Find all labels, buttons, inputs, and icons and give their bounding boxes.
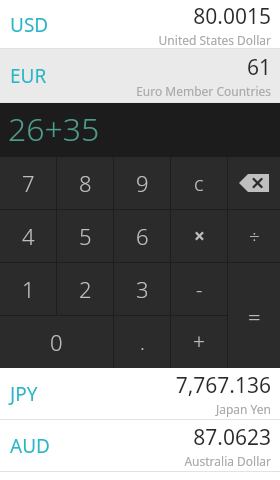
staticText: 87.0623	[193, 423, 271, 452]
staticText: 5	[79, 221, 92, 251]
staticText: 3	[136, 274, 149, 304]
staticText: ÷	[249, 223, 260, 249]
button[interactable]: +	[171, 316, 227, 368]
staticText: Japan Yen	[215, 401, 271, 417]
staticText: -	[196, 276, 203, 303]
button[interactable]: EUR	[0, 49, 280, 103]
staticText: 7	[22, 168, 35, 198]
button[interactable]: ×	[171, 210, 227, 262]
staticText: EUR	[10, 63, 47, 89]
staticText: United States Dollar	[158, 32, 271, 48]
staticText: AUD	[10, 433, 50, 459]
staticText: 2	[79, 274, 92, 304]
staticText: 26+35	[8, 107, 100, 151]
button[interactable]: USD	[0, 0, 280, 49]
staticText: =	[248, 301, 261, 331]
staticText: 6	[136, 221, 149, 251]
staticText: 4	[22, 221, 35, 251]
button[interactable]: 8	[57, 157, 113, 209]
button[interactable]: 3	[114, 263, 170, 315]
button[interactable]: ÷	[228, 210, 280, 262]
button[interactable]: 4	[0, 210, 56, 262]
staticText: 7,767.136	[175, 371, 271, 400]
staticText: c	[194, 170, 204, 197]
staticText: 80.0015	[193, 2, 271, 31]
button[interactable]: Backspace	[228, 157, 280, 209]
button[interactable]: 7	[0, 157, 56, 209]
staticText: Australia Dollar	[184, 453, 271, 469]
button[interactable]: -	[171, 263, 227, 315]
staticText: 8	[79, 168, 92, 198]
button[interactable]: 9	[114, 157, 170, 209]
staticText: .	[140, 329, 145, 356]
button[interactable]: AUD	[0, 420, 280, 472]
staticText: 9	[136, 168, 149, 198]
staticText: 61	[246, 53, 271, 82]
button[interactable]: .	[114, 316, 170, 368]
staticText: ×	[194, 223, 205, 249]
staticText: JPY	[10, 381, 38, 407]
staticText: USD	[10, 12, 49, 38]
button[interactable]: 26+35	[0, 103, 280, 157]
button[interactable]: JPY	[0, 368, 280, 420]
button[interactable]: c	[171, 157, 227, 209]
button[interactable]: =	[228, 263, 280, 368]
button[interactable]: 6	[114, 210, 170, 262]
button[interactable]: 5	[57, 210, 113, 262]
staticText: Euro Member Countries	[136, 83, 271, 99]
staticText: 1	[22, 274, 35, 304]
button[interactable]: 0	[0, 316, 113, 368]
staticText: 0	[50, 327, 63, 357]
button[interactable]: 1	[0, 263, 56, 315]
button[interactable]: 2	[57, 263, 113, 315]
staticText: +	[193, 328, 205, 357]
